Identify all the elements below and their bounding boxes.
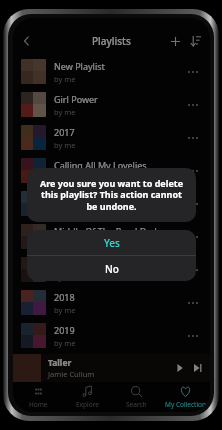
staticText: by me: [54, 173, 76, 183]
button[interactable]: Back: [17, 31, 37, 51]
button[interactable]: Calling All My Lovelies: [13, 154, 210, 187]
button[interactable]: Home: [13, 382, 63, 412]
button[interactable]: More options: [184, 162, 202, 180]
button[interactable]: More options: [184, 327, 202, 345]
button[interactable]: Next: [190, 358, 206, 378]
staticText: by me: [54, 305, 76, 315]
button[interactable]: No: [27, 256, 196, 281]
button[interactable]: Play: [170, 358, 190, 378]
staticText: New Playlist: [54, 60, 105, 72]
staticText: Taller: [48, 357, 72, 369]
staticText: Middle Of The Road Dad: [54, 225, 157, 237]
staticText: by me: [54, 107, 76, 117]
button[interactable]: My Collection: [161, 382, 210, 412]
staticText: Are you sure you want to delete this pla…: [37, 177, 186, 213]
button[interactable]: More options: [184, 294, 202, 312]
staticText: Jamie Cullum: [48, 369, 95, 379]
button[interactable]: More options: [184, 129, 202, 147]
button[interactable]: More options: [184, 261, 202, 279]
button[interactable]: New Playlist: [13, 55, 210, 88]
staticText: by me: [54, 74, 76, 84]
button[interactable]: Yes: [27, 230, 196, 255]
button[interactable]: Sort: [187, 32, 205, 50]
staticText: 2019: [54, 324, 75, 336]
button[interactable]: More options: [184, 96, 202, 114]
staticText: Inspired by Eminem: [54, 192, 139, 204]
button[interactable]: 2019: [13, 319, 210, 352]
button[interactable]: Inspired by Eminem: [13, 187, 210, 220]
staticText: No: [105, 262, 119, 276]
staticText: Calling All My Lovelies: [54, 159, 147, 171]
button[interactable]: More options: [184, 63, 202, 81]
staticText: Girl Power: [54, 93, 98, 105]
staticText: Yes: [104, 236, 120, 250]
button[interactable]: More options: [184, 195, 202, 213]
staticText: Explore: [76, 400, 99, 409]
staticText: by me: [54, 272, 76, 282]
button[interactable]: More options: [184, 228, 202, 246]
button[interactable]: Search: [112, 382, 161, 412]
staticText: Playlists: [92, 34, 131, 48]
staticText: 2018: [54, 291, 75, 303]
button[interactable]: Explore: [63, 382, 112, 412]
staticText: 2017: [54, 126, 75, 138]
staticText: Search: [126, 400, 147, 409]
button[interactable]: Taller: [13, 354, 210, 382]
staticText: by me: [54, 338, 76, 348]
button[interactable]: Middle Of The Road Dad: [13, 220, 210, 253]
button[interactable]: Fuck You: [13, 253, 210, 286]
button[interactable]: Girl Power: [13, 88, 210, 121]
staticText: Home: [29, 400, 48, 409]
button[interactable]: 2018: [13, 286, 210, 319]
staticText: My Collection: [165, 400, 207, 409]
button[interactable]: Add playlist: [166, 32, 184, 50]
button[interactable]: 2017: [13, 121, 210, 154]
staticText: by me: [54, 140, 76, 150]
